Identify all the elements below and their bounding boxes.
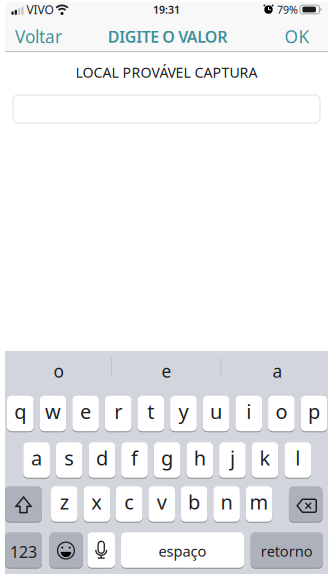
- button[interactable]: g: [154, 442, 180, 478]
- button[interactable]: u: [203, 396, 229, 431]
- button[interactable]: [87, 532, 115, 568]
- button[interactable]: e: [72, 396, 99, 431]
- button[interactable]: retorno: [251, 532, 323, 568]
- button[interactable]: n: [213, 486, 240, 522]
- button[interactable]: h: [186, 442, 213, 478]
- staticText: z: [60, 488, 69, 515]
- staticText: VIVO: [26, 1, 53, 17]
- button[interactable]: i: [235, 396, 262, 431]
- button[interactable]: b: [181, 486, 207, 522]
- staticText: u: [210, 398, 222, 425]
- button[interactable]: p: [301, 396, 327, 431]
- staticText: r: [114, 398, 122, 425]
- button[interactable]: r: [105, 396, 131, 431]
- staticText: o: [275, 398, 287, 425]
- staticText: s: [64, 444, 74, 471]
- button[interactable]: k: [252, 442, 278, 478]
- staticText: v: [157, 488, 167, 515]
- staticText: e: [161, 359, 171, 382]
- button[interactable]: v: [148, 486, 175, 522]
- staticText: a: [272, 359, 282, 382]
- button[interactable]: a: [23, 442, 50, 478]
- staticText: a: [31, 444, 42, 471]
- staticText: b: [188, 488, 200, 515]
- button[interactable]: [13, 95, 320, 123]
- staticText: retorno: [261, 541, 313, 561]
- button[interactable]: x: [83, 486, 110, 522]
- button[interactable]: c: [116, 486, 142, 522]
- staticText: 19:31: [153, 2, 180, 17]
- button[interactable]: [50, 532, 83, 568]
- staticText: w: [45, 398, 61, 425]
- button[interactable]: espaço: [121, 532, 244, 568]
- staticText: k: [259, 444, 270, 471]
- button[interactable]: e: [116, 355, 216, 387]
- staticText: g: [161, 444, 173, 471]
- button[interactable]: l: [284, 442, 311, 478]
- button[interactable]: s: [56, 442, 82, 478]
- button[interactable]: 123: [5, 532, 42, 568]
- button[interactable]: y: [170, 396, 197, 431]
- staticText: y: [178, 398, 188, 425]
- button[interactable]: m: [246, 486, 272, 522]
- staticText: t: [147, 398, 154, 425]
- staticText: x: [91, 488, 102, 515]
- staticText: o: [53, 359, 63, 382]
- staticText: 79%: [277, 2, 298, 17]
- button[interactable]: q: [7, 396, 34, 431]
- staticText: f: [131, 444, 138, 471]
- button[interactable]: j: [219, 442, 246, 478]
- button[interactable]: a: [227, 355, 327, 387]
- button[interactable]: f: [121, 442, 148, 478]
- staticText: n: [221, 488, 233, 515]
- staticText: Voltar: [15, 25, 62, 48]
- button[interactable]: [289, 486, 322, 522]
- staticText: 123: [10, 541, 37, 562]
- staticText: LOCAL PROVÁVEL CAPTURA: [75, 63, 257, 82]
- button[interactable]: o: [8, 355, 108, 387]
- button[interactable]: Voltar: [9, 18, 68, 55]
- button[interactable]: d: [89, 442, 115, 478]
- staticText: h: [194, 444, 206, 471]
- staticText: OK: [284, 25, 309, 48]
- button[interactable]: OK: [278, 18, 315, 55]
- staticText: d: [96, 444, 108, 471]
- staticText: i: [246, 398, 251, 425]
- button[interactable]: w: [40, 396, 66, 431]
- button[interactable]: [5, 486, 42, 522]
- staticText: c: [124, 488, 134, 515]
- button[interactable]: t: [137, 396, 164, 431]
- button[interactable]: z: [51, 486, 78, 522]
- staticText: m: [249, 488, 268, 515]
- staticText: DIGITE O VALOR: [108, 26, 227, 47]
- staticText: e: [80, 398, 91, 425]
- staticText: q: [14, 398, 26, 425]
- staticText: p: [308, 398, 320, 425]
- staticText: espaço: [158, 541, 206, 561]
- staticText: l: [295, 444, 300, 471]
- staticText: j: [230, 444, 235, 471]
- button[interactable]: o: [268, 396, 295, 431]
